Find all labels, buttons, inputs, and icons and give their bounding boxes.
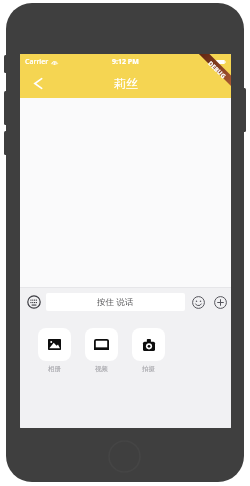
button[interactable]: 相册 — [38, 328, 71, 373]
staticText: 9:12 PM — [112, 57, 139, 67]
staticText: DEBUG — [206, 59, 228, 81]
button[interactable]: More options — [214, 296, 227, 309]
button[interactable]: 视频 — [85, 328, 118, 373]
button[interactable]: Keyboard — [27, 295, 41, 309]
staticText: 相册 — [48, 365, 61, 373]
button[interactable]: 拍摄 — [132, 328, 165, 373]
staticText: 莉丝 — [114, 76, 138, 91]
button[interactable]: Back — [25, 71, 50, 96]
button[interactable]: 按住 说话 — [46, 293, 185, 311]
button[interactable]: Emoji — [192, 296, 205, 309]
staticText: Carrier — [25, 57, 49, 67]
staticText: 视频 — [95, 365, 108, 373]
staticText: 按住 说话 — [97, 296, 134, 308]
staticText: 拍摄 — [142, 365, 155, 373]
